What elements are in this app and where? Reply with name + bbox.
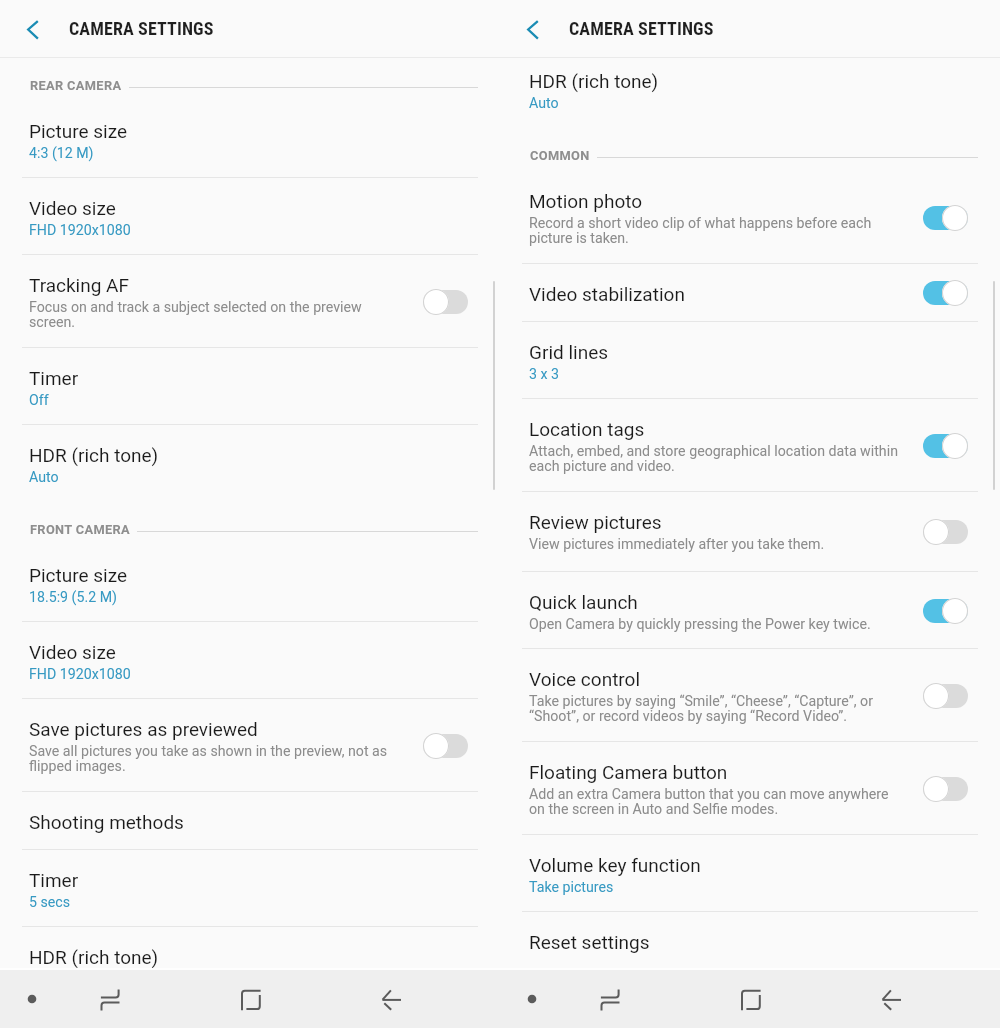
staticText: Attach, embed, and store geographical lo… — [529, 443, 901, 475]
staticText: Off — [29, 392, 49, 409]
staticText: Location tags — [529, 418, 645, 440]
button[interactable]: Video stabilization — [500, 264, 1000, 322]
staticText: CAMERA SETTINGS — [569, 18, 714, 39]
staticText: 18.5:9 (5.2 M) — [29, 589, 117, 606]
button[interactable]: Hide keyboard — [8, 970, 55, 1028]
button[interactable]: Timer — [0, 348, 500, 425]
staticText: FHD 1920x1080 — [29, 666, 131, 683]
staticText: HDR (rich tone) — [29, 946, 159, 968]
staticText: Record a short video clip of what happen… — [529, 215, 901, 247]
staticText: View pictures immediately after you take… — [529, 536, 825, 553]
staticText: Grid lines — [529, 341, 609, 363]
button[interactable]: Grid lines — [500, 322, 1000, 399]
staticText: Quick launch — [529, 591, 638, 613]
button[interactable]: Picture size — [0, 101, 500, 178]
staticText: Picture size — [29, 120, 128, 142]
button[interactable]: HDR (rich tone) — [0, 425, 500, 502]
button[interactable]: Motion photo — [500, 171, 1000, 264]
button[interactable]: Location tags on — [891, 399, 1000, 492]
button[interactable]: Review pictures — [500, 492, 1000, 572]
button[interactable]: Switch apps — [87, 970, 133, 1028]
staticText: Add an extra Camera button that you can … — [529, 786, 901, 818]
button[interactable]: Save pictures as previewed — [0, 699, 500, 792]
staticText: Open Camera by quickly pressing the Powe… — [529, 616, 871, 633]
staticText: Take pictures — [529, 879, 614, 896]
button[interactable]: Tracking AF off — [391, 255, 500, 348]
button[interactable]: Save pictures as previewed off — [391, 699, 500, 792]
button[interactable]: Switch apps — [587, 970, 633, 1028]
staticText: Video size — [29, 197, 116, 219]
button[interactable]: HDR (rich tone) — [500, 58, 1000, 128]
staticText: HDR (rich tone) — [529, 70, 659, 92]
staticText: CAMERA SETTINGS — [69, 18, 214, 39]
staticText: Video size — [29, 641, 116, 663]
staticText: 3 x 3 — [529, 366, 560, 383]
staticText: Tracking AF — [29, 274, 130, 296]
staticText: Timer — [29, 869, 79, 891]
button[interactable]: Navigate up — [504, 0, 554, 58]
button[interactable]: Picture size — [0, 545, 500, 622]
button[interactable]: Hide keyboard — [508, 970, 555, 1028]
staticText: FHD 1920x1080 — [29, 222, 131, 239]
button[interactable]: Floating Camera button — [500, 742, 1000, 835]
staticText: FRONT CAMERA — [30, 522, 130, 537]
staticText: Focus on and track a subject selected on… — [29, 299, 401, 331]
button[interactable]: Volume key function — [500, 835, 1000, 912]
button[interactable]: Back — [867, 970, 913, 1028]
button[interactable]: Reset settings — [500, 912, 1000, 961]
button[interactable]: Navigate up — [4, 0, 54, 58]
staticText: Volume key function — [529, 854, 701, 876]
staticText: Shooting methods — [29, 811, 184, 833]
button[interactable]: Tracking AF — [0, 255, 500, 348]
button[interactable]: HDR (rich tone) — [0, 927, 500, 968]
staticText: Timer — [29, 367, 79, 389]
staticText: Auto — [529, 95, 559, 112]
staticText: Reset settings — [529, 931, 650, 953]
staticText: Voice control — [529, 668, 641, 690]
staticText: HDR (rich tone) — [29, 444, 159, 466]
staticText: COMMON — [530, 148, 590, 163]
staticText: Motion photo — [529, 190, 643, 212]
button[interactable]: Shooting methods — [0, 792, 500, 850]
button[interactable]: Home — [727, 970, 773, 1028]
button[interactable]: Video size — [0, 178, 500, 255]
staticText: Save all pictures you take as shown in t… — [29, 743, 401, 775]
staticText: Video stabilization — [529, 283, 685, 305]
button[interactable]: Motion photo on — [891, 171, 1000, 264]
staticText: Take pictures by saying “Smile”, “Cheese… — [529, 693, 901, 725]
button[interactable]: Video size — [0, 622, 500, 699]
staticText: REAR CAMERA — [30, 78, 122, 93]
staticText: Auto — [29, 469, 59, 486]
button[interactable]: Home — [227, 970, 273, 1028]
button[interactable]: Timer — [0, 850, 500, 927]
button[interactable]: Video stabilization on — [891, 264, 1000, 322]
button[interactable]: Quick launch on — [891, 572, 1000, 649]
button[interactable]: Location tags — [500, 399, 1000, 492]
staticText: Picture size — [29, 564, 128, 586]
staticText: Review pictures — [529, 511, 662, 533]
button[interactable]: Review pictures off — [891, 492, 1000, 572]
button[interactable]: Quick launch — [500, 572, 1000, 649]
staticText: 5 secs — [29, 894, 71, 911]
button[interactable]: Voice control — [500, 649, 1000, 742]
button[interactable]: Floating Camera button off — [891, 742, 1000, 835]
staticText: 4:3 (12 M) — [29, 145, 94, 162]
staticText: Save pictures as previewed — [29, 718, 258, 740]
button[interactable]: Voice control off — [891, 649, 1000, 742]
button[interactable]: Back — [367, 970, 413, 1028]
staticText: Floating Camera button — [529, 761, 728, 783]
